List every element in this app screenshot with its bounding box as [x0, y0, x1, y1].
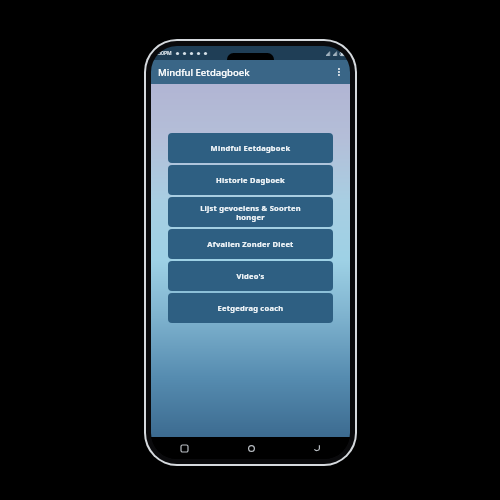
button[interactable]: More options	[328, 61, 350, 83]
button[interactable]: Back	[308, 439, 326, 457]
button[interactable]: Recents	[175, 439, 193, 457]
staticText: Mindful Eetdagboek	[158, 66, 250, 79]
button[interactable]: Historie Dagboek	[168, 165, 333, 195]
button[interactable]: Afvallen Zonder Dieet	[168, 229, 333, 259]
button[interactable]: Video's	[168, 261, 333, 291]
staticText: 1:30PM	[154, 50, 172, 57]
button[interactable]: Lijst gevoelens & Soorten honger	[168, 197, 333, 227]
button[interactable]: Eetgedrag coach	[168, 293, 333, 323]
button[interactable]: Home	[242, 439, 260, 457]
staticText: Lijst gevoelens & Soorten honger	[171, 203, 330, 222]
staticText: Mindful Eetdagboek	[171, 143, 330, 153]
staticText: Afvallen Zonder Dieet	[171, 239, 330, 249]
staticText: Historie Dagboek	[171, 175, 330, 185]
staticText: Video's	[171, 271, 330, 281]
button[interactable]: Mindful Eetdagboek	[168, 133, 333, 163]
staticText: Eetgedrag coach	[171, 303, 330, 313]
